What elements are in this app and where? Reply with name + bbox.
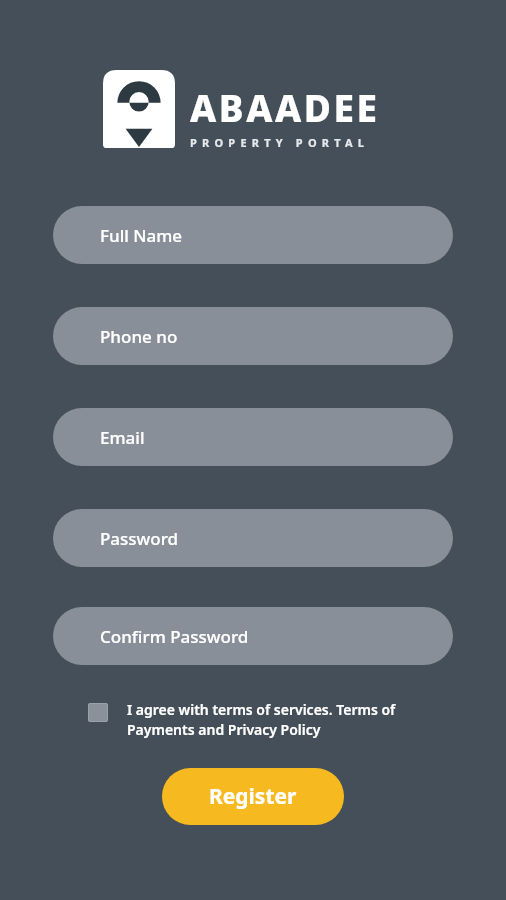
other: Agree to terms checkbox bbox=[88, 703, 108, 722]
button[interactable]: Password bbox=[53, 509, 453, 567]
staticText: ABAADEE bbox=[190, 82, 380, 132]
staticText: Phone no bbox=[100, 325, 178, 348]
button[interactable]: Phone no bbox=[53, 307, 453, 365]
button[interactable]: Email bbox=[53, 408, 453, 466]
button[interactable]: Confirm Password bbox=[53, 607, 453, 665]
staticText: Register bbox=[209, 782, 297, 811]
staticText: PROPERTY PORTAL bbox=[190, 135, 370, 150]
button[interactable]: Register bbox=[162, 768, 344, 825]
button[interactable]: Full Name bbox=[53, 206, 453, 264]
button[interactable]: Agree to terms checkbox bbox=[88, 700, 446, 739]
staticText: Password bbox=[100, 527, 179, 550]
staticText: Email bbox=[100, 426, 145, 449]
staticText: I agree with terms of services. Terms of… bbox=[127, 700, 446, 739]
staticText: Full Name bbox=[100, 224, 183, 247]
staticText: Confirm Password bbox=[100, 625, 249, 648]
